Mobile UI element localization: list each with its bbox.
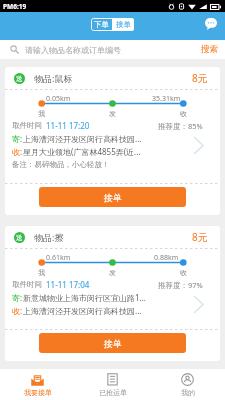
staticText: 送 <box>16 75 23 83</box>
staticText: 物品:擦 <box>34 231 192 243</box>
button[interactable]: 接单 <box>39 187 186 207</box>
button[interactable]: 下单 <box>91 18 112 31</box>
button[interactable]: 接单 <box>39 333 186 353</box>
staticText: 我 <box>38 268 45 277</box>
staticText: 上海漕河泾开发区闵行高科技园... <box>23 305 189 316</box>
button[interactable]: 我的 <box>150 369 225 400</box>
button[interactable]: 接单 <box>112 18 134 31</box>
staticText: 8元 <box>192 71 208 85</box>
staticText: 发 <box>109 109 116 118</box>
staticText: 物品:鼠标 <box>34 72 192 84</box>
staticText: 送 <box>16 234 23 242</box>
staticText: 35.31km <box>152 94 181 104</box>
staticText: 我要接单 <box>24 388 52 397</box>
staticText: 上海漕河泾开发区闵行高科技园... <box>23 133 189 144</box>
staticText: 收: <box>12 146 23 157</box>
staticText: 星月大业领地(广富林4855弄(近... <box>23 146 189 157</box>
button[interactable]: 搜索 <box>194 40 225 59</box>
staticText: 推荐度：97% <box>158 280 203 290</box>
staticText: PM6:19 <box>3 2 27 11</box>
staticText: 0.88km <box>154 253 179 263</box>
button[interactable]: 送 <box>5 67 220 215</box>
button[interactable]: 已抢运单 <box>75 369 150 400</box>
staticText: 寄: <box>12 133 23 144</box>
staticText: 接单 <box>104 192 122 203</box>
button[interactable]: 送 <box>5 226 220 361</box>
staticText: 我的 <box>181 388 195 397</box>
staticText: 收 <box>180 109 187 118</box>
staticText: 寄: <box>12 292 23 303</box>
staticText: 取件时间 <box>12 121 42 130</box>
staticText: 下单 <box>94 20 109 29</box>
staticText: 请输入物品名称或订单编号 <box>25 45 194 55</box>
staticText: 11-11 17:20 <box>46 120 90 131</box>
button[interactable]: Messages <box>205 18 217 30</box>
staticText: 收: <box>12 305 23 316</box>
button[interactable]: 我要接单 <box>0 369 75 400</box>
staticText: 11-11 17:04 <box>46 279 90 290</box>
staticText: 已抢运单 <box>99 388 127 397</box>
staticText: 接单 <box>116 20 131 29</box>
staticText: 接单 <box>104 338 122 349</box>
staticText: 我 <box>38 109 45 118</box>
staticText: 取件时间 <box>12 280 42 289</box>
staticText: 8元 <box>192 230 208 244</box>
staticText: 搜索 <box>201 44 218 55</box>
staticText: 0.61km <box>46 253 71 263</box>
staticText: 收 <box>180 268 187 277</box>
staticText: 发 <box>109 268 116 277</box>
staticText: 新意城物业上海市闵行区宜山路1... <box>23 292 189 303</box>
staticText: 0.05km <box>46 94 71 104</box>
staticText: 推荐度：85% <box>158 121 203 131</box>
staticText: 备注：易碎物品，小心轻放！ <box>12 160 110 169</box>
